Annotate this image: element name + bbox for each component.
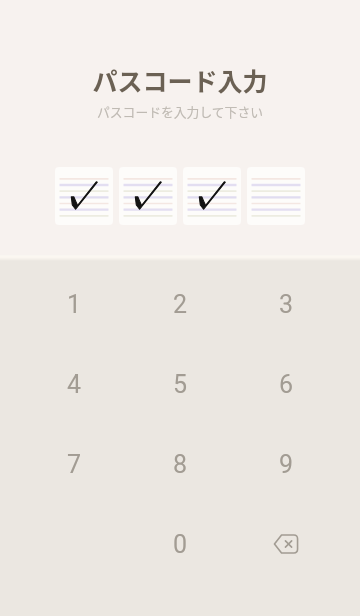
staticText: 7 <box>67 450 82 479</box>
button[interactable]: 4 <box>27 345 121 423</box>
button[interactable]: 9 <box>239 425 333 503</box>
staticText: 6 <box>279 370 294 399</box>
button[interactable]: 0 <box>133 505 227 583</box>
staticText: 1 <box>67 290 82 319</box>
staticText: パスコードを入力して下さい <box>97 102 263 121</box>
button[interactable]: 2 <box>133 265 227 343</box>
button[interactable]: 3 <box>239 265 333 343</box>
other: Backspace <box>273 533 299 555</box>
staticText: 3 <box>279 290 294 319</box>
button[interactable]: 6 <box>239 345 333 423</box>
button[interactable]: Backspace <box>239 505 333 583</box>
button[interactable]: 7 <box>27 425 121 503</box>
button[interactable]: 1 <box>27 265 121 343</box>
staticText: パスコード入力 <box>92 62 268 98</box>
staticText: 2 <box>173 290 188 319</box>
staticText: 9 <box>279 450 294 479</box>
staticText: 5 <box>173 370 188 399</box>
button[interactable]: 5 <box>133 345 227 423</box>
staticText: 4 <box>67 370 82 399</box>
staticText: 0 <box>173 530 188 559</box>
button[interactable]: 8 <box>133 425 227 503</box>
staticText: 8 <box>173 450 188 479</box>
